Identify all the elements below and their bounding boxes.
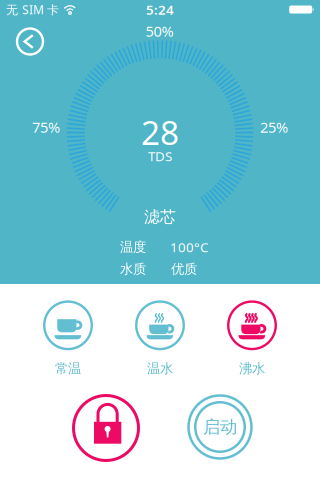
- button[interactable]: Lock: [73, 395, 139, 461]
- staticText: 100°C: [170, 238, 208, 256]
- staticText: 常温: [55, 360, 81, 377]
- button[interactable]: Back: [12, 23, 48, 59]
- staticText: 滤芯: [144, 207, 176, 227]
- button[interactable]: 启动: [186, 393, 254, 461]
- staticText: 水质: [120, 261, 146, 277]
- staticText: 启动: [203, 416, 237, 438]
- button[interactable]: 常温: [22, 301, 114, 377]
- staticText: 优质: [171, 261, 197, 277]
- staticText: 28: [141, 110, 179, 154]
- button[interactable]: 沸水: [206, 301, 298, 377]
- staticText: 75%: [32, 117, 60, 137]
- staticText: 无 SIM 卡: [6, 1, 59, 17]
- staticText: 温水: [147, 360, 173, 377]
- staticText: 50%: [145, 21, 173, 41]
- staticText: 25%: [260, 117, 288, 137]
- staticText: TDS: [148, 147, 172, 165]
- button[interactable]: 温水: [114, 301, 206, 377]
- staticText: 温度: [120, 239, 146, 255]
- staticText: 5:24: [146, 1, 174, 18]
- staticText: 沸水: [239, 360, 265, 377]
